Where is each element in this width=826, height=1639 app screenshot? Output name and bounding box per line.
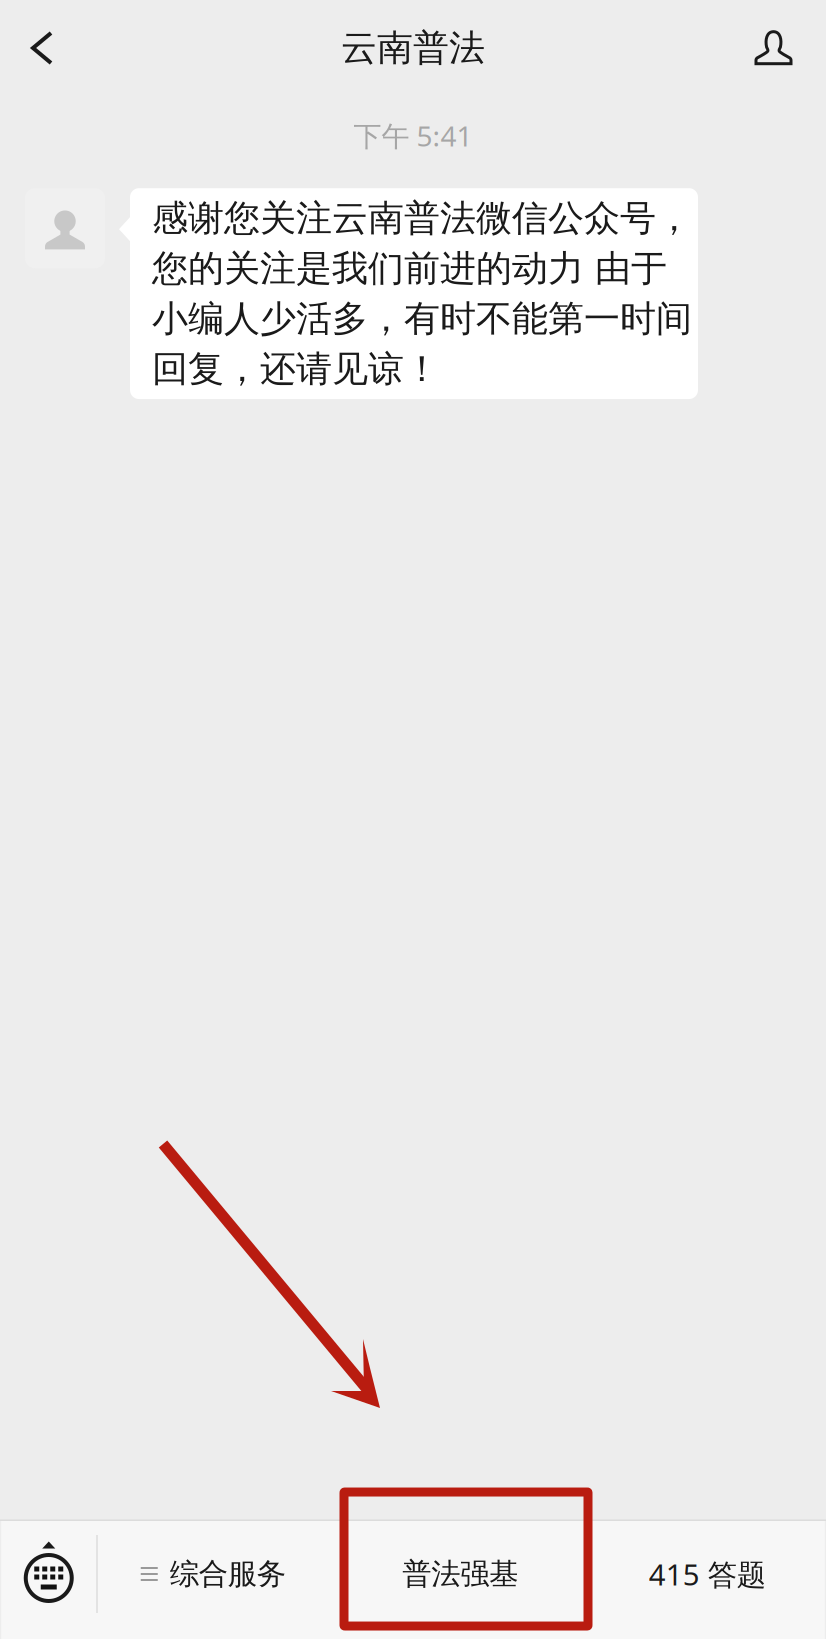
staticText: 普法强基 xyxy=(402,1556,518,1592)
button[interactable]: Back xyxy=(0,0,74,96)
button[interactable]: Keyboard xyxy=(1,1521,96,1627)
button[interactable]: 415 答题 xyxy=(578,1521,825,1627)
staticText: 下午 5:41 xyxy=(353,117,472,154)
button[interactable]: 普法强基 xyxy=(343,1521,578,1627)
staticText: 感谢您关注云南普法微信公众号， xyxy=(152,196,692,240)
staticText: 小编人少活多，有时不能第一时间 xyxy=(152,297,692,341)
staticText: 415 答题 xyxy=(649,1554,766,1593)
staticText: 云南普法 xyxy=(341,26,485,70)
staticText: 综合服务 xyxy=(170,1556,286,1592)
staticText: 您的关注是我们前进的动力 由于 xyxy=(152,246,667,291)
button[interactable]: 综合服务 xyxy=(98,1521,343,1627)
button[interactable]: Profile xyxy=(733,0,826,96)
staticText: 回复，还请见谅！ xyxy=(152,347,440,391)
